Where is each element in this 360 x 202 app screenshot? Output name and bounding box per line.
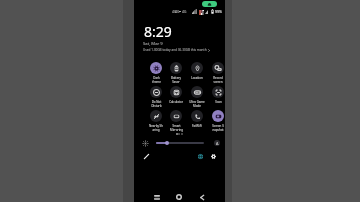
staticText: Nearby Sh aring [149,124,163,132]
button[interactable]: Auto brightness [214,140,220,146]
button[interactable]: Dark theme [146,62,166,84]
staticText: Calculator [169,100,183,104]
button[interactable]: Screen S napshot [208,110,228,132]
staticText: Record screen [213,76,223,84]
button[interactable]: Home [174,192,184,202]
button[interactable]: Back [197,192,207,202]
button[interactable]: Battery Saver [166,62,186,84]
staticText: Location [191,76,203,80]
button[interactable]: Smart Mirroring [166,110,186,132]
button[interactable]: Internet [196,152,205,161]
button[interactable]: FatWiFi [187,110,207,128]
staticText: FatWiFi [192,124,202,128]
button[interactable]: Edit tiles [142,152,151,161]
button[interactable] [156,142,204,144]
button[interactable]: Nearby Sh aring [146,110,166,132]
staticText: Sat, Mar 9 [143,41,163,47]
button[interactable]: Calculator [166,86,186,104]
staticText: 4G [182,9,187,13]
button[interactable]: Settings [209,152,218,161]
other: Brightness [142,140,149,147]
button[interactable]: Ultra Game Mode [187,86,207,108]
staticText: Do Not Disturb [151,100,162,108]
button[interactable]: Recents [152,192,162,202]
button[interactable]: Do Not Disturb [146,86,166,108]
button[interactable]: Location [187,62,207,80]
button[interactable]: Used 1.30GB today and 36.30GB this month [143,48,210,52]
staticText: 8:29 [144,22,172,41]
staticText: 4G [172,9,177,13]
staticText: Ultra Game Mode [189,100,205,108]
staticText: Dark theme [152,76,161,84]
staticText: 4G [175,9,180,13]
staticText: Scan [215,100,222,104]
staticText: Smart Mirroring [170,124,183,132]
button[interactable]: Scan [208,86,228,104]
staticText: Screen S napshot [212,124,224,132]
staticText: Battery Saver [171,76,181,84]
staticText: A [216,141,219,146]
button[interactable]: Record screen [208,62,228,84]
staticText: Used 1.30GB today and 36.30GB this month [143,48,207,52]
staticText: 99% [215,9,222,14]
